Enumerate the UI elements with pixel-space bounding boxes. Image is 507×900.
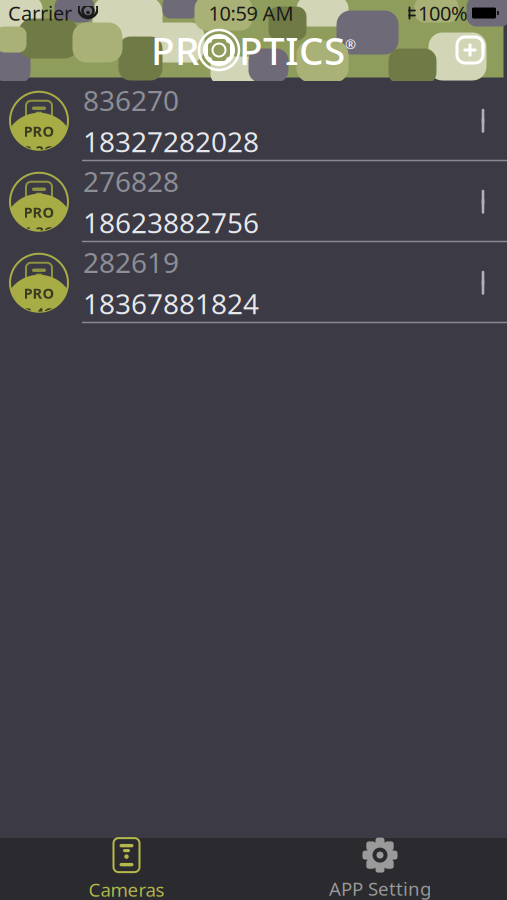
staticText: 10:59 AM [208, 0, 293, 26]
staticText: PRO 1.3G [23, 202, 54, 241]
button[interactable]: Add camera [447, 28, 493, 72]
staticText: PR [151, 24, 199, 76]
staticText: 276828 [83, 163, 179, 200]
staticText: Carrier [8, 0, 72, 26]
staticText: 18327282028 [83, 123, 259, 160]
staticText: 100% [418, 0, 468, 26]
staticText: 18367881824 [83, 285, 259, 322]
button[interactable]: APP Setting [253, 838, 507, 900]
staticText: 18623882756 [83, 204, 259, 241]
staticText: APP Setting [329, 876, 431, 900]
staticText: Cameras [88, 877, 164, 900]
button[interactable]: PRO 2.3G [0, 81, 507, 162]
button[interactable]: PRO 1.3G [0, 162, 507, 243]
staticText: ® [345, 35, 356, 53]
staticText: PRO 2.3G [23, 121, 54, 160]
button[interactable]: PRO 3.4G [0, 243, 507, 324]
button[interactable]: Cameras [0, 838, 253, 900]
staticText: 282619 [83, 244, 179, 281]
staticText: 836270 [83, 82, 179, 119]
staticText: PTICS [239, 24, 345, 76]
staticText: PRO 3.4G [23, 283, 54, 322]
